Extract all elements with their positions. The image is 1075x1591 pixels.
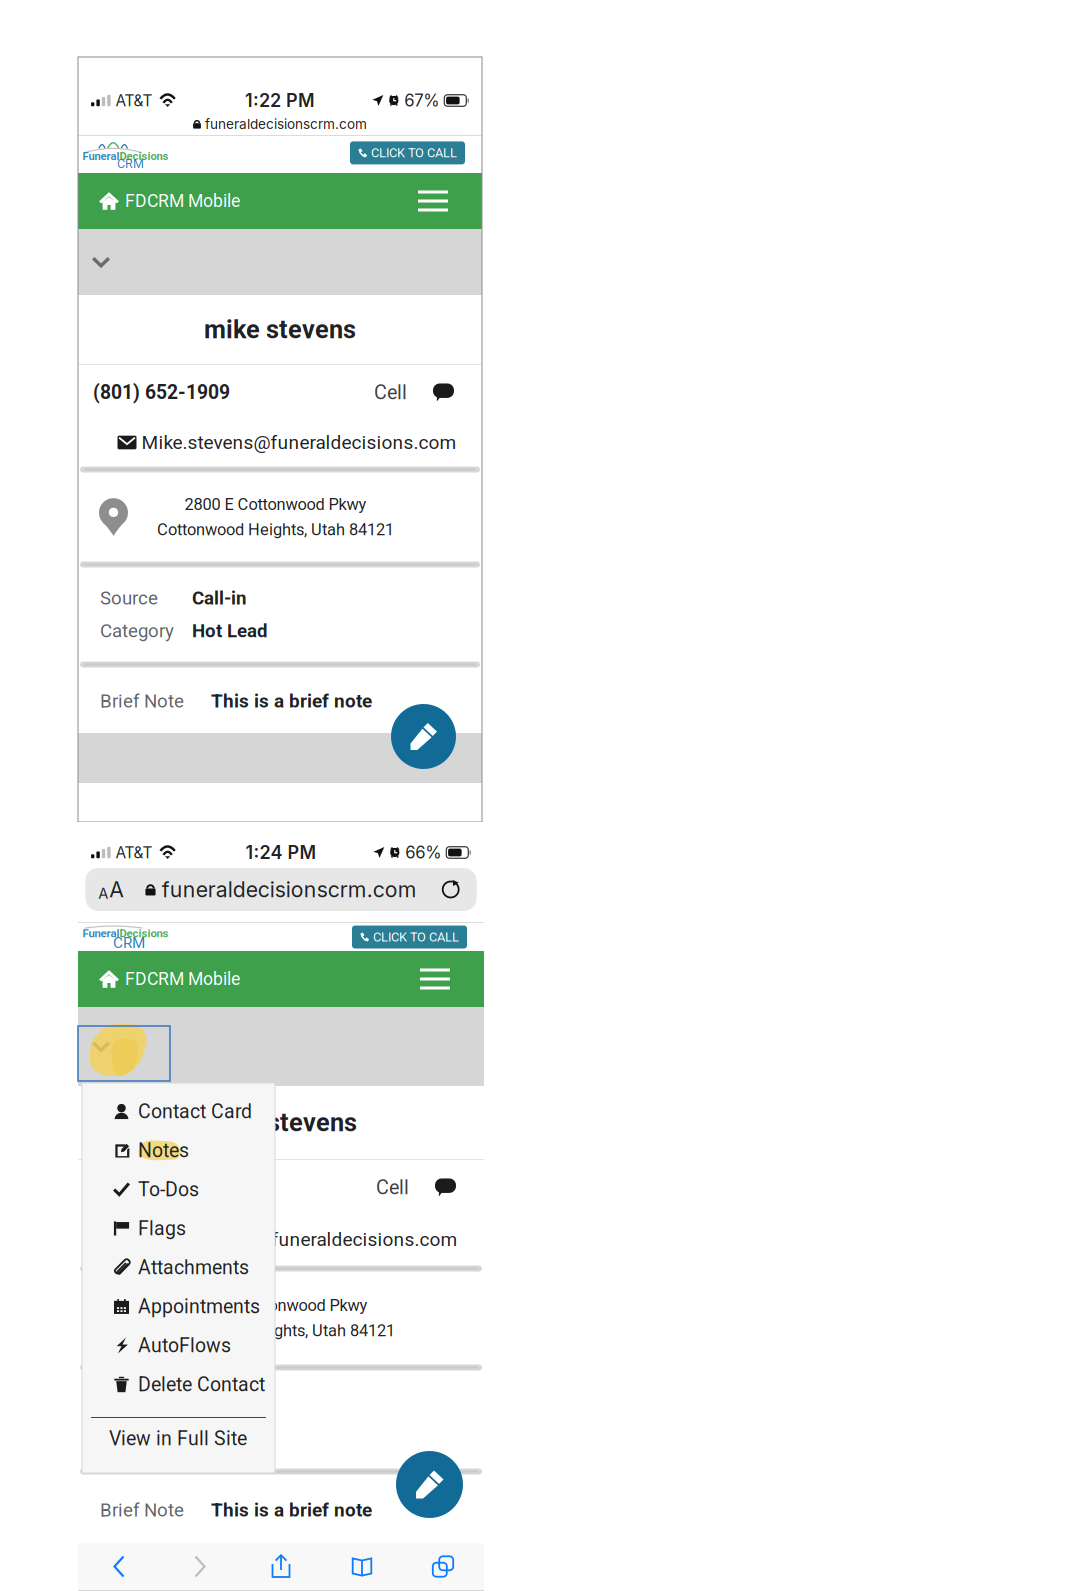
staticText: Decisions (119, 150, 168, 163)
staticText: Brief Note (100, 690, 184, 712)
staticText: (801) 652-1909 (93, 1176, 230, 1199)
staticText: Hot Lead (192, 620, 268, 642)
staticText: AT&T (116, 843, 153, 862)
staticText: Cell (376, 1176, 409, 1199)
staticText: Cottonwood Heights, Utah 84121 (157, 520, 394, 539)
button[interactable]: AutoFlows (82, 1326, 275, 1365)
staticText: CRM (113, 934, 145, 952)
staticText: mike stevens (204, 315, 356, 344)
button[interactable]: FDCRM Mobile (78, 181, 240, 221)
staticText: Funeral (83, 927, 120, 940)
staticText: 2800 E Cottonwood Pkwy (185, 1296, 367, 1315)
button[interactable]: Forward (159, 1543, 240, 1590)
staticText: Category (100, 1425, 174, 1447)
staticText: CLICK TO CALL (371, 145, 457, 160)
staticText: Mike.stevens@funeraldecisions.com (142, 1228, 457, 1251)
button[interactable]: CLICK TO CALL (350, 141, 465, 164)
staticText: Contact Card (138, 1100, 252, 1123)
staticText: Brief Note (100, 1499, 184, 1521)
button[interactable]: Text size (85, 868, 137, 911)
staticText: Cell (374, 381, 407, 404)
staticText: 66% (405, 842, 441, 863)
button[interactable]: Contact Card (82, 1092, 275, 1131)
staticText: A (98, 885, 108, 902)
staticText: FDCRM Mobile (125, 969, 240, 989)
staticText: 67% (404, 90, 439, 111)
staticText: Cottonwood Heights, Utah 84121 (158, 1321, 395, 1340)
button[interactable]: Send message (409, 1165, 482, 1209)
button[interactable]: Actions menu (78, 1007, 124, 1086)
staticText: View in Full Site (109, 1427, 247, 1450)
staticText: FDCRM Mobile (125, 191, 240, 211)
staticText: Decisions (120, 927, 169, 940)
staticText: AT&T (116, 91, 153, 110)
button[interactable]: Edit contact (396, 1451, 463, 1518)
button[interactable]: Edit contact (391, 704, 456, 769)
staticText: Attachments (138, 1256, 249, 1279)
staticText: AutoFlows (138, 1334, 231, 1357)
button[interactable]: Delete Contact (82, 1365, 275, 1404)
button[interactable]: Tabs (402, 1543, 483, 1590)
staticText: (801) 652-1909 (93, 381, 230, 404)
staticText: This is a brief note (211, 690, 372, 712)
button[interactable]: Bookmarks (321, 1543, 402, 1590)
button[interactable]: Flags (82, 1209, 275, 1248)
button[interactable]: Menu (420, 958, 484, 999)
staticText: Call-in (192, 587, 246, 609)
staticText: A (109, 877, 124, 902)
staticText: funeraldecisionscrm.com (205, 116, 367, 132)
button[interactable]: FDCRM Mobile (78, 959, 240, 999)
staticText: Appointments (138, 1295, 260, 1318)
button[interactable]: Actions menu (78, 229, 124, 295)
button[interactable]: CLICK TO CALL (352, 925, 467, 948)
staticText: Flags (138, 1217, 186, 1240)
staticText: Delete Contact (138, 1373, 265, 1396)
button[interactable]: Share (240, 1543, 321, 1590)
staticText: Funeral (82, 150, 119, 163)
staticText: 1:22 PM (245, 90, 315, 111)
staticText: Hot Lead (192, 1425, 268, 1447)
staticText: CLICK TO CALL (373, 929, 459, 944)
button[interactable]: Appointments (82, 1287, 275, 1326)
staticText: mike stevens (205, 1108, 357, 1137)
staticText: Mike.stevens@funeraldecisions.com (141, 431, 456, 454)
staticText: Notes (138, 1139, 189, 1162)
button[interactable]: Back (78, 1543, 159, 1590)
staticText: 1:24 PM (245, 842, 316, 863)
staticText: Category (100, 620, 174, 642)
button[interactable]: View in Full Site (82, 1418, 275, 1459)
staticText: funeraldecisionscrm.com (162, 877, 417, 902)
staticText: 2800 E Cottonwood Pkwy (184, 495, 366, 514)
button[interactable]: Attachments (82, 1248, 275, 1287)
staticText: CRM (117, 156, 144, 171)
button[interactable]: To-Dos (82, 1170, 275, 1209)
staticText: Source (100, 1392, 158, 1414)
button[interactable]: Send message (407, 370, 480, 414)
button[interactable]: Reload (425, 868, 477, 911)
button[interactable]: Menu (418, 180, 482, 221)
staticText: To-Dos (138, 1178, 199, 1201)
staticText: This is a brief note (211, 1499, 372, 1521)
button[interactable]: Notes (82, 1131, 275, 1170)
staticText: Source (100, 587, 158, 609)
